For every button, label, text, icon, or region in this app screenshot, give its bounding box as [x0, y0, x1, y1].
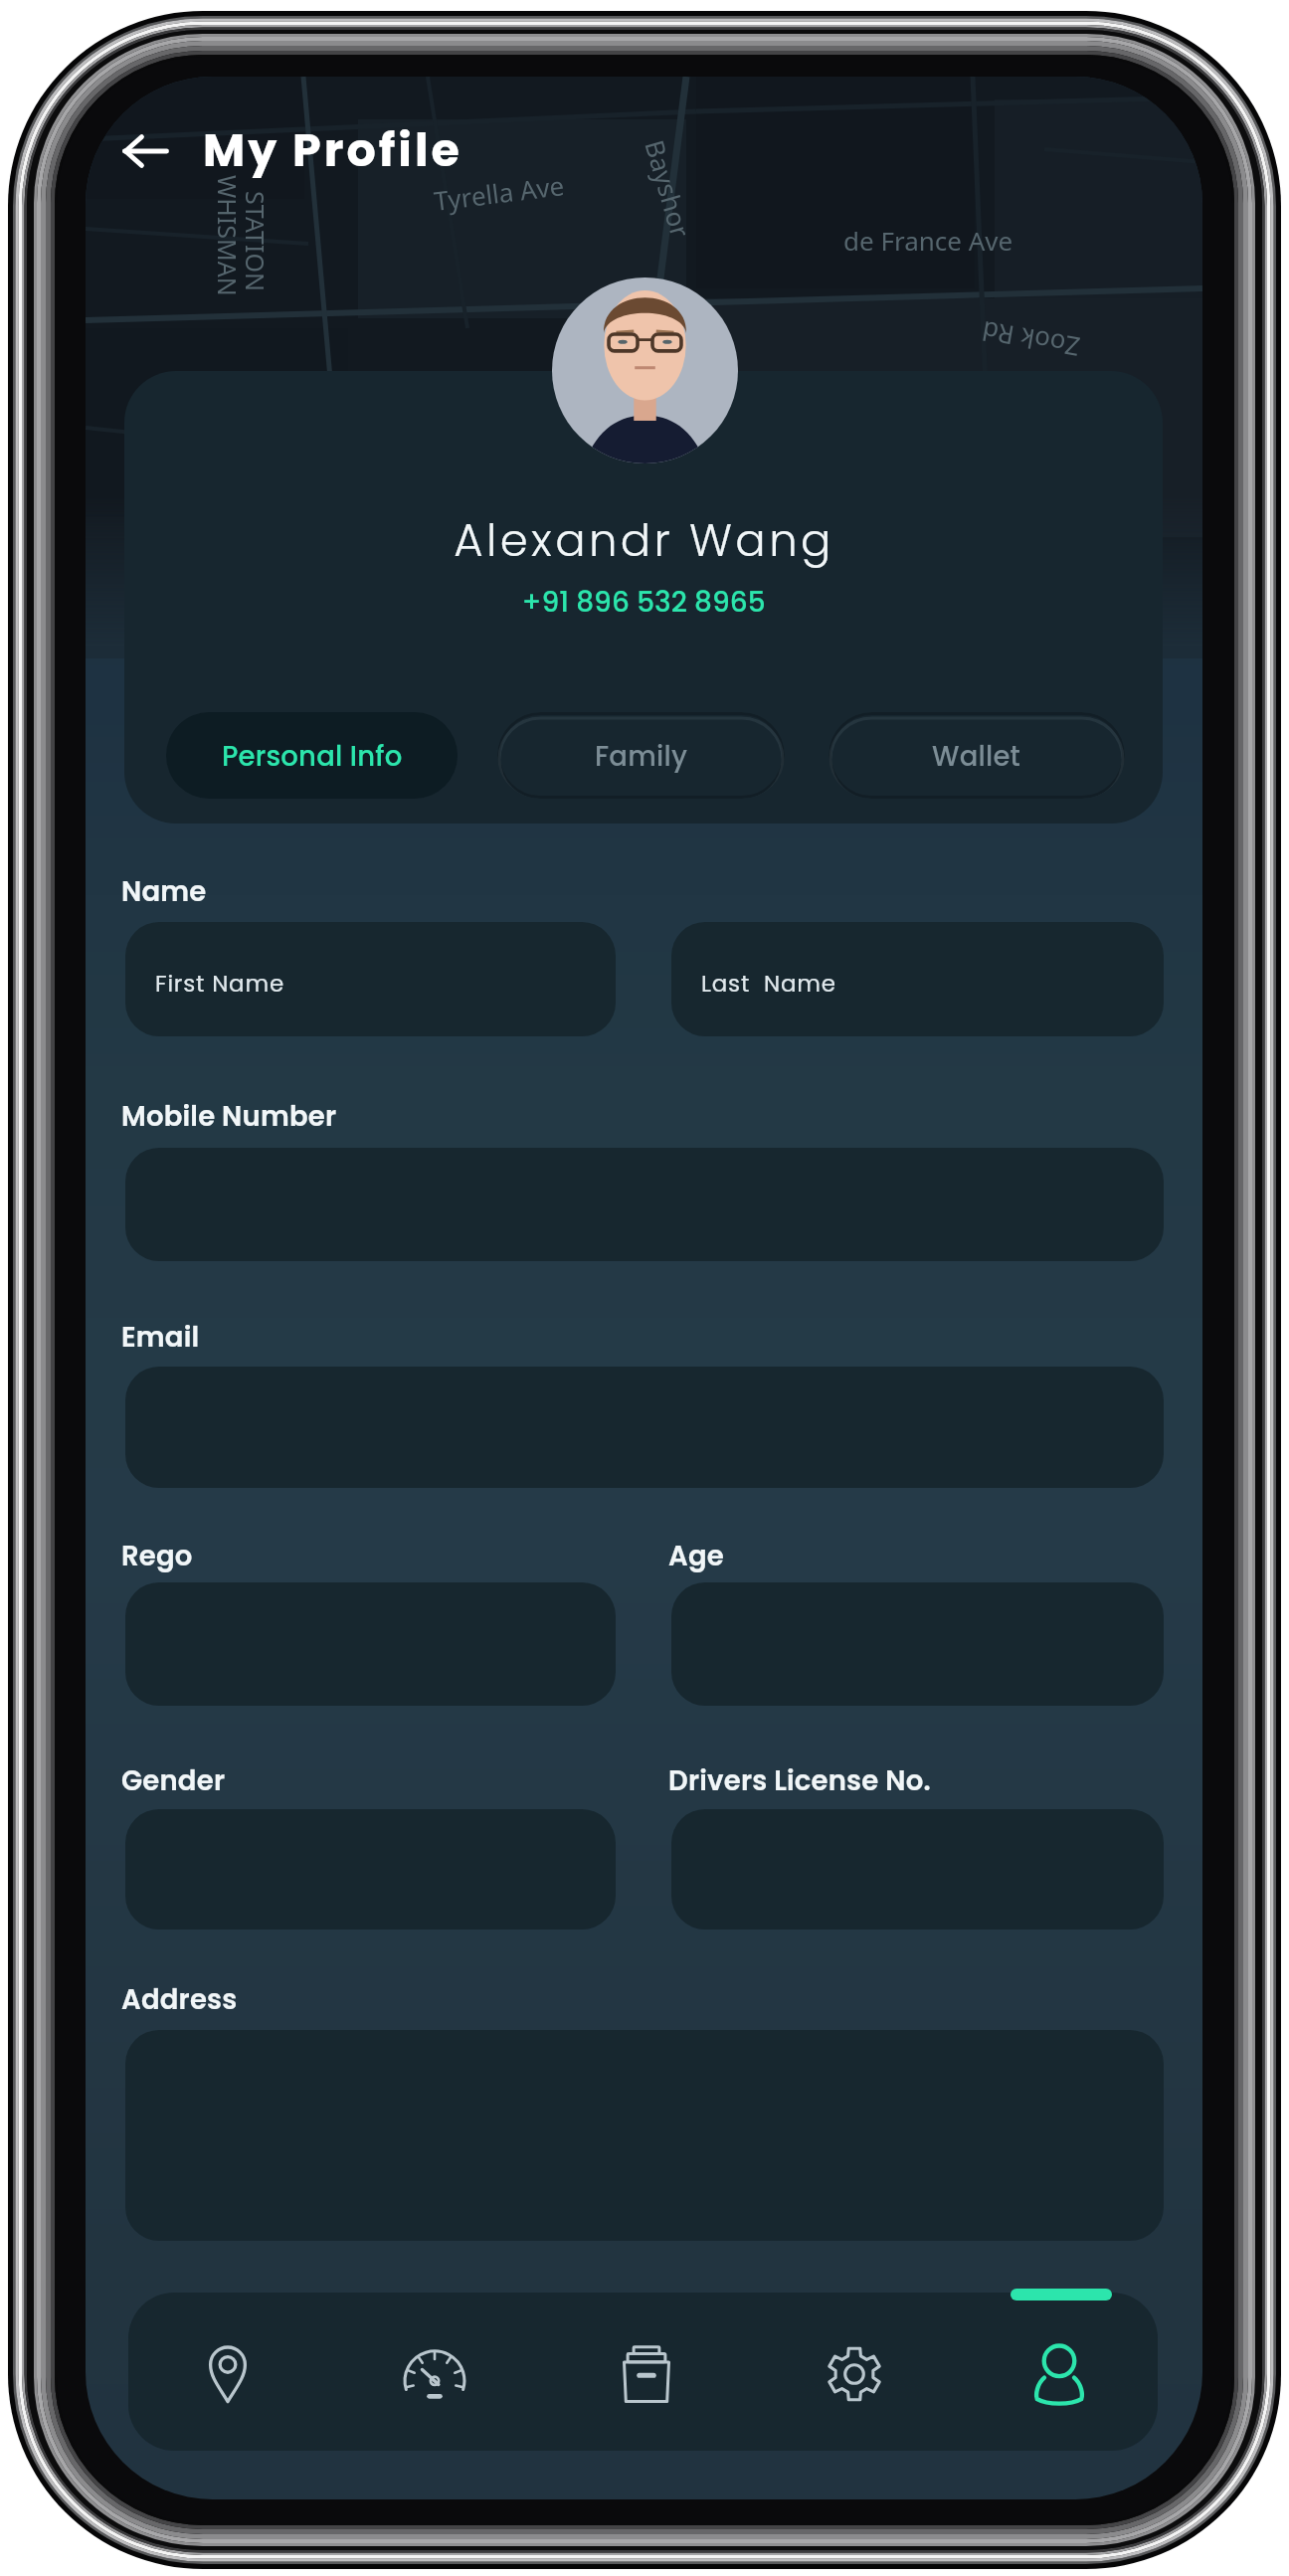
staticText: Rego [121, 1537, 193, 1574]
staticText: My Profile [203, 118, 462, 182]
staticText: Last Name [701, 968, 836, 1000]
staticText: WHISMAN [211, 175, 245, 296]
staticText: Tyrella Ave [432, 167, 567, 218]
staticText: STATION [239, 191, 273, 292]
button[interactable]: Wallet [829, 712, 1125, 799]
button[interactable]: Speedometer [379, 2318, 490, 2430]
button[interactable]: Profile [1004, 2318, 1115, 2430]
button[interactable] [125, 1582, 616, 1706]
staticText: Zook Rd [978, 314, 1082, 365]
button[interactable]: Family [497, 712, 785, 799]
staticText: de France Ave [843, 223, 1013, 258]
staticText: Address [121, 1980, 238, 2018]
staticText: Gender [121, 1761, 226, 1799]
staticText: Alexandr Wang [454, 509, 834, 572]
staticText: First Name [155, 968, 285, 1000]
staticText: Name [121, 872, 207, 910]
button[interactable] [671, 1582, 1164, 1706]
button[interactable] [125, 1809, 616, 1930]
staticText: +91 896 532 8965 [521, 583, 766, 622]
staticText: Wallet [932, 737, 1021, 775]
staticText: Email [121, 1318, 200, 1356]
staticText: Drivers License No. [668, 1761, 931, 1799]
button[interactable]: First Name [125, 922, 616, 1036]
button[interactable] [671, 1809, 1164, 1930]
staticText: Family [595, 737, 688, 775]
button[interactable]: Last Name [671, 922, 1164, 1036]
staticText: Mobile Number [121, 1097, 337, 1135]
staticText: Age [668, 1537, 724, 1574]
button[interactable]: Personal Info [166, 712, 458, 799]
staticText: Personal Info [222, 737, 403, 775]
button[interactable]: Location [172, 2318, 283, 2430]
button[interactable]: Settings [799, 2318, 910, 2430]
staticText: Bayshor [638, 136, 699, 241]
button[interactable]: Archive [591, 2318, 702, 2430]
button[interactable]: Back [109, 119, 181, 183]
